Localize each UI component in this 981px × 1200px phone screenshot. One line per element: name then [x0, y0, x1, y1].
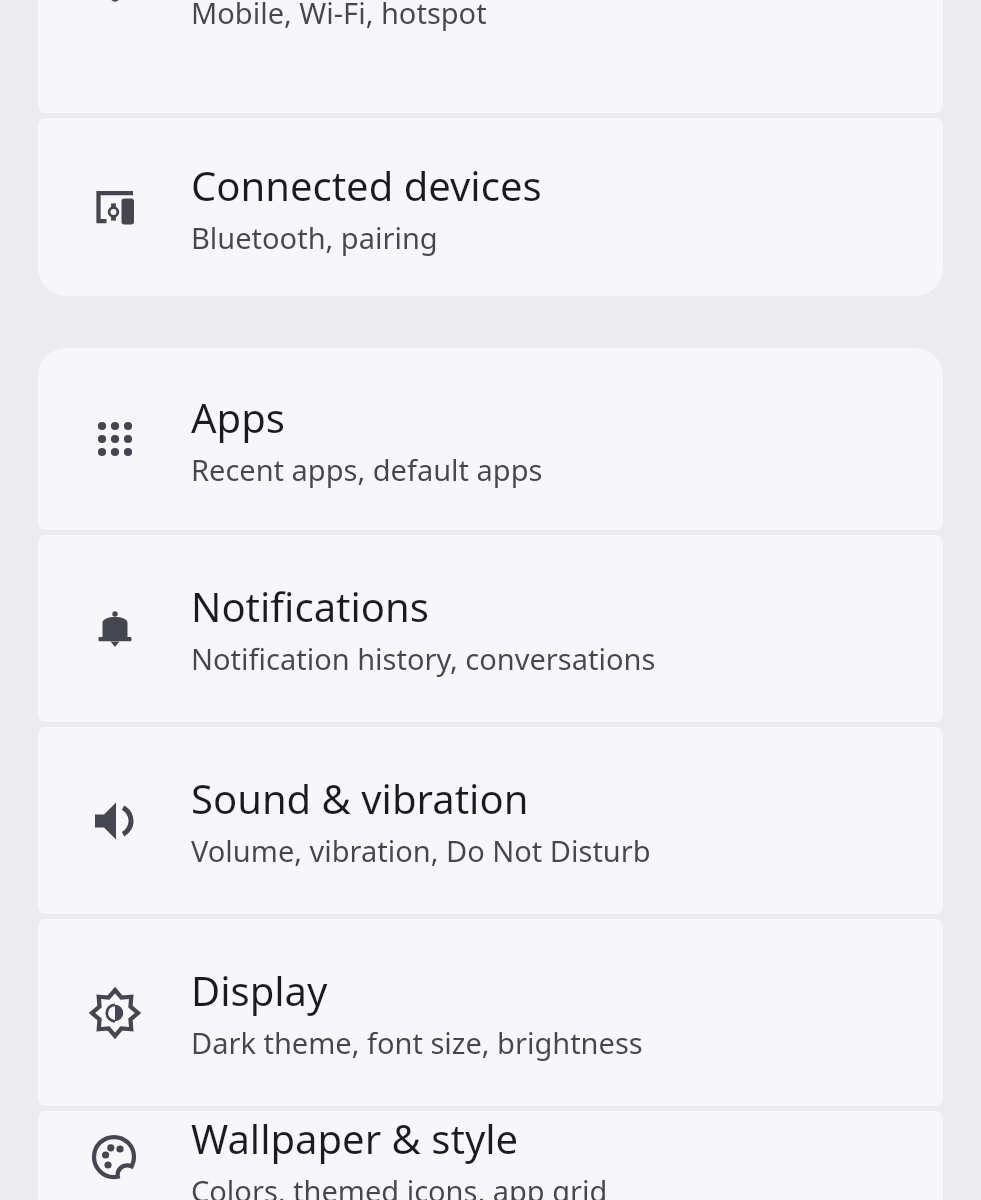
staticText: Dark theme, font size, brightness — [191, 1023, 643, 1062]
staticText: Colors, themed icons, app grid — [191, 1171, 608, 1200]
other: Wallpaper and style — [90, 1131, 140, 1181]
staticText: Connected devices — [191, 158, 542, 212]
staticText: Notification history, conversations — [191, 639, 656, 678]
button[interactable]: Wallpaper and style — [38, 1111, 943, 1200]
staticText: Volume, vibration, Do Not Disturb — [191, 831, 651, 870]
button[interactable]: Connected devices — [38, 118, 943, 296]
staticText: Recent apps, default apps — [191, 450, 543, 489]
other: Connected devices — [90, 182, 140, 232]
other: Display — [90, 988, 140, 1038]
staticText: Display — [191, 963, 328, 1017]
staticText: Mobile, Wi-Fi, hotspot — [191, 0, 487, 32]
other: Apps — [90, 414, 140, 464]
button[interactable]: Apps — [38, 348, 943, 530]
staticText: Sound & vibration — [191, 771, 529, 825]
staticText: Apps — [191, 390, 285, 444]
other: Network and internet — [90, 0, 140, 8]
button[interactable]: Network and internet — [38, 0, 943, 113]
other: Notifications — [90, 604, 140, 654]
button[interactable]: Sound and vibration — [38, 727, 943, 914]
button[interactable]: Notifications — [38, 535, 943, 722]
staticText: Wallpaper & style — [191, 1111, 519, 1165]
staticText: Notifications — [191, 579, 429, 633]
staticText: Bluetooth, pairing — [191, 218, 438, 257]
button[interactable]: Display — [38, 919, 943, 1106]
other: Sound and vibration — [90, 796, 140, 846]
